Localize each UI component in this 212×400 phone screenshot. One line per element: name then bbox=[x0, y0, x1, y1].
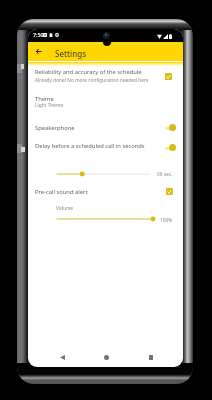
button[interactable] bbox=[28, 183, 183, 199]
staticText: Already done! No more configuration need… bbox=[35, 77, 149, 84]
staticText: Light Theme bbox=[35, 102, 64, 109]
staticText: Reliability and accuracy of the schedule bbox=[35, 68, 142, 76]
button[interactable]: Back bbox=[33, 46, 44, 57]
staticText: Pre-call sound alert bbox=[35, 188, 88, 196]
button[interactable]: Slider bbox=[55, 214, 155, 224]
button[interactable] bbox=[28, 66, 183, 86]
button[interactable]: Toggle bbox=[163, 123, 179, 133]
staticText: Settings bbox=[55, 48, 87, 59]
button[interactable]: Home bbox=[100, 351, 112, 363]
button[interactable] bbox=[28, 139, 183, 155]
staticText: Theme bbox=[35, 95, 54, 103]
staticText: 66 sec. bbox=[157, 171, 173, 178]
button[interactable] bbox=[28, 91, 183, 111]
button[interactable]: Back bbox=[56, 351, 68, 363]
staticText: Speakerphone bbox=[35, 124, 75, 132]
button[interactable]: Toggle setting bbox=[163, 71, 173, 81]
button[interactable]: Slider bbox=[55, 169, 152, 179]
button[interactable]: Toggle bbox=[163, 143, 179, 153]
staticText: 100% bbox=[160, 217, 173, 224]
staticText: Delay before a scheduled call in seconds bbox=[35, 142, 145, 150]
staticText: Volume bbox=[56, 205, 74, 212]
staticText: 7:50 bbox=[33, 31, 44, 38]
button[interactable]: Recent apps bbox=[145, 351, 157, 363]
button[interactable]: Toggle setting bbox=[164, 186, 174, 196]
button[interactable] bbox=[28, 119, 183, 135]
